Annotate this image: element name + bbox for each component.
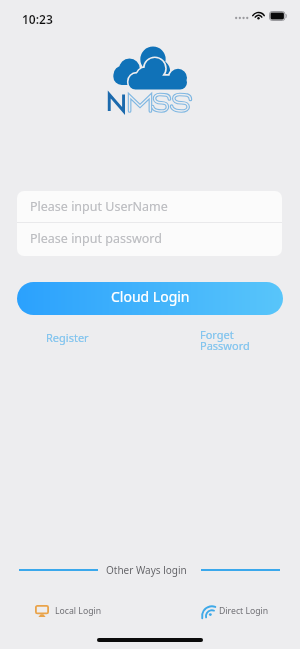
button[interactable]: Cloud Login — [17, 282, 283, 315]
staticText: 10:23 — [22, 11, 53, 27]
staticText: Cloud Login — [111, 287, 190, 306]
staticText: Please input password — [30, 230, 162, 247]
button[interactable]: Register — [40, 330, 94, 348]
other: Direct Login — [201, 605, 214, 618]
button[interactable]: Local Login — [35, 604, 102, 618]
staticText: Direct Login — [219, 605, 269, 617]
button[interactable]: Forget Password — [194, 327, 256, 355]
staticText: Local Login — [55, 605, 102, 617]
staticText: Forget Password — [200, 327, 250, 353]
staticText: Register — [46, 330, 89, 345]
button[interactable]: Direct Login — [201, 604, 269, 618]
staticText: Other Ways login — [106, 563, 187, 577]
button[interactable]: Please input UserName — [17, 191, 282, 222]
other: Local Login — [35, 605, 49, 617]
button[interactable]: Please input password — [17, 223, 282, 256]
staticText: Please input UserName — [30, 198, 168, 215]
